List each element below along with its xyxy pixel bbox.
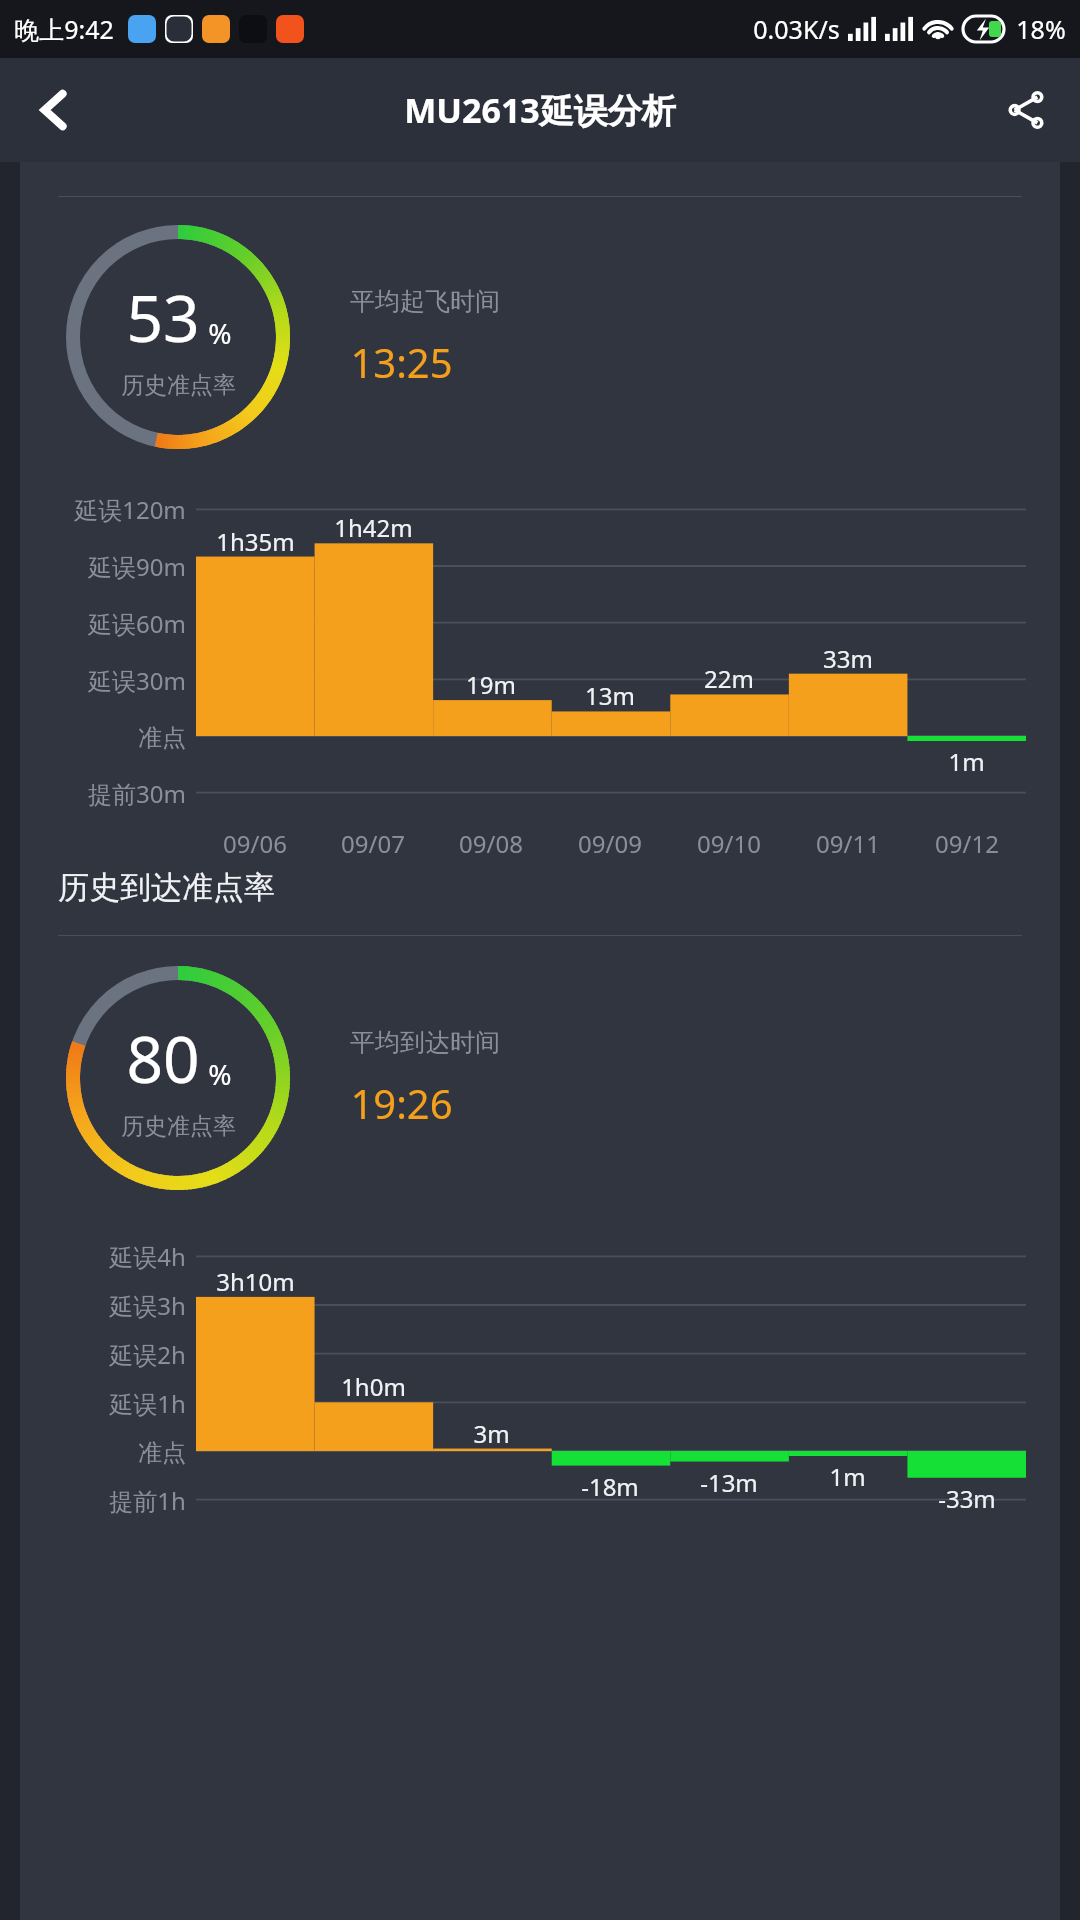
staticText: 19m [466,668,516,701]
staticText: 09/11 [816,827,880,860]
staticText: MU2613延误分析 [404,87,676,133]
staticText: 09/07 [341,827,405,860]
staticText: 延误4h [109,1240,186,1273]
staticText: 3m [473,1417,510,1450]
staticText: 1h35m [216,525,295,558]
staticText: 09/10 [697,827,761,860]
staticText: 提前30m [88,777,186,810]
staticText: 53 [126,274,200,361]
staticText: 历史准点率 [121,1112,236,1141]
staticText: 1m [829,1460,866,1493]
staticText: % [208,314,232,352]
staticText: 0.03K/s [753,12,840,46]
staticText: 延误30m [88,664,186,697]
staticText: 09/09 [578,827,642,860]
staticText: 延误3h [109,1289,186,1322]
staticText: 延误60m [88,607,186,640]
staticText: 18% [1016,12,1066,46]
staticText: 平均起飞时间 [350,286,500,317]
staticText: 延误1h [109,1387,186,1420]
staticText: 历史准点率 [121,371,236,400]
staticText: 平均到达时间 [350,1027,500,1058]
button[interactable]: Back [18,74,90,146]
staticText: 延误2h [109,1338,186,1371]
staticText: -33m [938,1482,996,1515]
staticText: 1h0m [341,1370,406,1403]
staticText: 80 [126,1015,200,1102]
staticText: -18m [581,1470,639,1503]
staticText: 提前1h [109,1484,186,1517]
staticText: 晚上9:42 [14,12,114,46]
staticText: 09/12 [935,827,999,860]
button[interactable]: Share [990,74,1062,146]
staticText: 延误90m [88,550,186,583]
staticText: 准点 [138,723,186,753]
staticText: -13m [700,1466,758,1499]
staticText: 历史到达准点率 [58,868,275,907]
staticText: 延误120m [74,493,186,526]
staticText: % [208,1055,232,1093]
staticText: 3h10m [216,1265,295,1298]
staticText: 准点 [138,1438,186,1468]
staticText: 13:25 [350,335,453,389]
staticText: 22m [704,662,754,695]
staticText: 33m [823,642,873,675]
staticText: 13m [585,679,635,712]
staticText: 09/08 [459,827,523,860]
staticText: 1h42m [334,511,413,544]
staticText: 09/06 [223,827,287,860]
staticText: 19:26 [350,1076,453,1130]
staticText: 1m [948,745,985,778]
